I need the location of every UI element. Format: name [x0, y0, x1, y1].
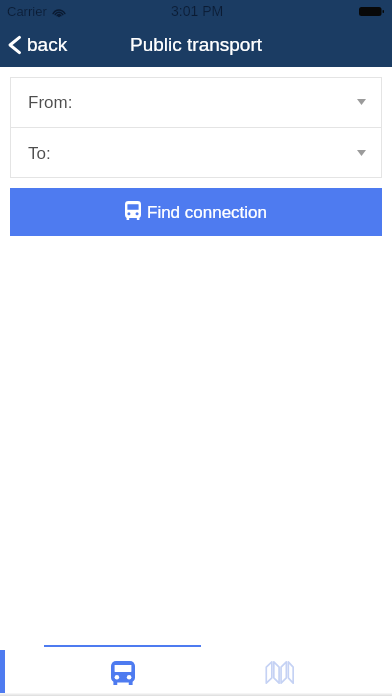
- staticText: Public transport: [130, 34, 263, 55]
- staticText: Carrier: [7, 4, 47, 19]
- button[interactable]: From:: [10, 77, 382, 127]
- staticText: To:: [28, 144, 51, 163]
- button[interactable]: back: [0, 29, 82, 60]
- button[interactable]: Public transport: [44, 652, 201, 693]
- button[interactable]: To:: [10, 128, 382, 178]
- staticText: back: [27, 34, 68, 55]
- button[interactable]: Map: [201, 652, 358, 693]
- staticText: From:: [28, 93, 73, 112]
- staticText: 3:01 PM: [171, 3, 224, 19]
- staticText: Find connection: [147, 203, 268, 222]
- button[interactable]: Find connection: [10, 188, 382, 236]
